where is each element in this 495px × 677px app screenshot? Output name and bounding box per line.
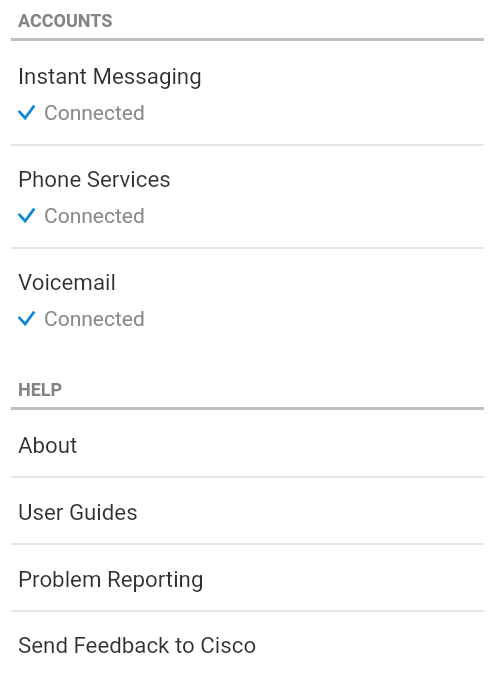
staticText: Problem Reporting: [18, 566, 204, 592]
staticText: Connected: [44, 101, 145, 126]
staticText: ACCOUNTS: [18, 10, 113, 31]
button[interactable]: User Guides: [0, 478, 495, 543]
staticText: Instant Messaging: [18, 63, 202, 89]
button[interactable]: Instant Messaging: [0, 41, 495, 144]
other: Connected: [17, 105, 35, 123]
staticText: Voicemail: [18, 269, 116, 295]
button[interactable]: Problem Reporting: [0, 545, 495, 610]
other: Connected: [17, 208, 35, 226]
staticText: Connected: [44, 204, 145, 229]
button[interactable]: Send Feedback to Cisco: [0, 612, 495, 677]
staticText: Connected: [44, 307, 145, 332]
staticText: About: [18, 432, 78, 458]
button[interactable]: Voicemail: [0, 249, 495, 332]
button[interactable]: About: [0, 410, 495, 476]
staticText: Send Feedback to Cisco: [18, 632, 257, 658]
staticText: HELP: [18, 379, 63, 400]
staticText: Phone Services: [18, 166, 171, 192]
staticText: User Guides: [18, 499, 138, 525]
button[interactable]: Phone Services: [0, 146, 495, 247]
other: Connected: [17, 311, 35, 329]
